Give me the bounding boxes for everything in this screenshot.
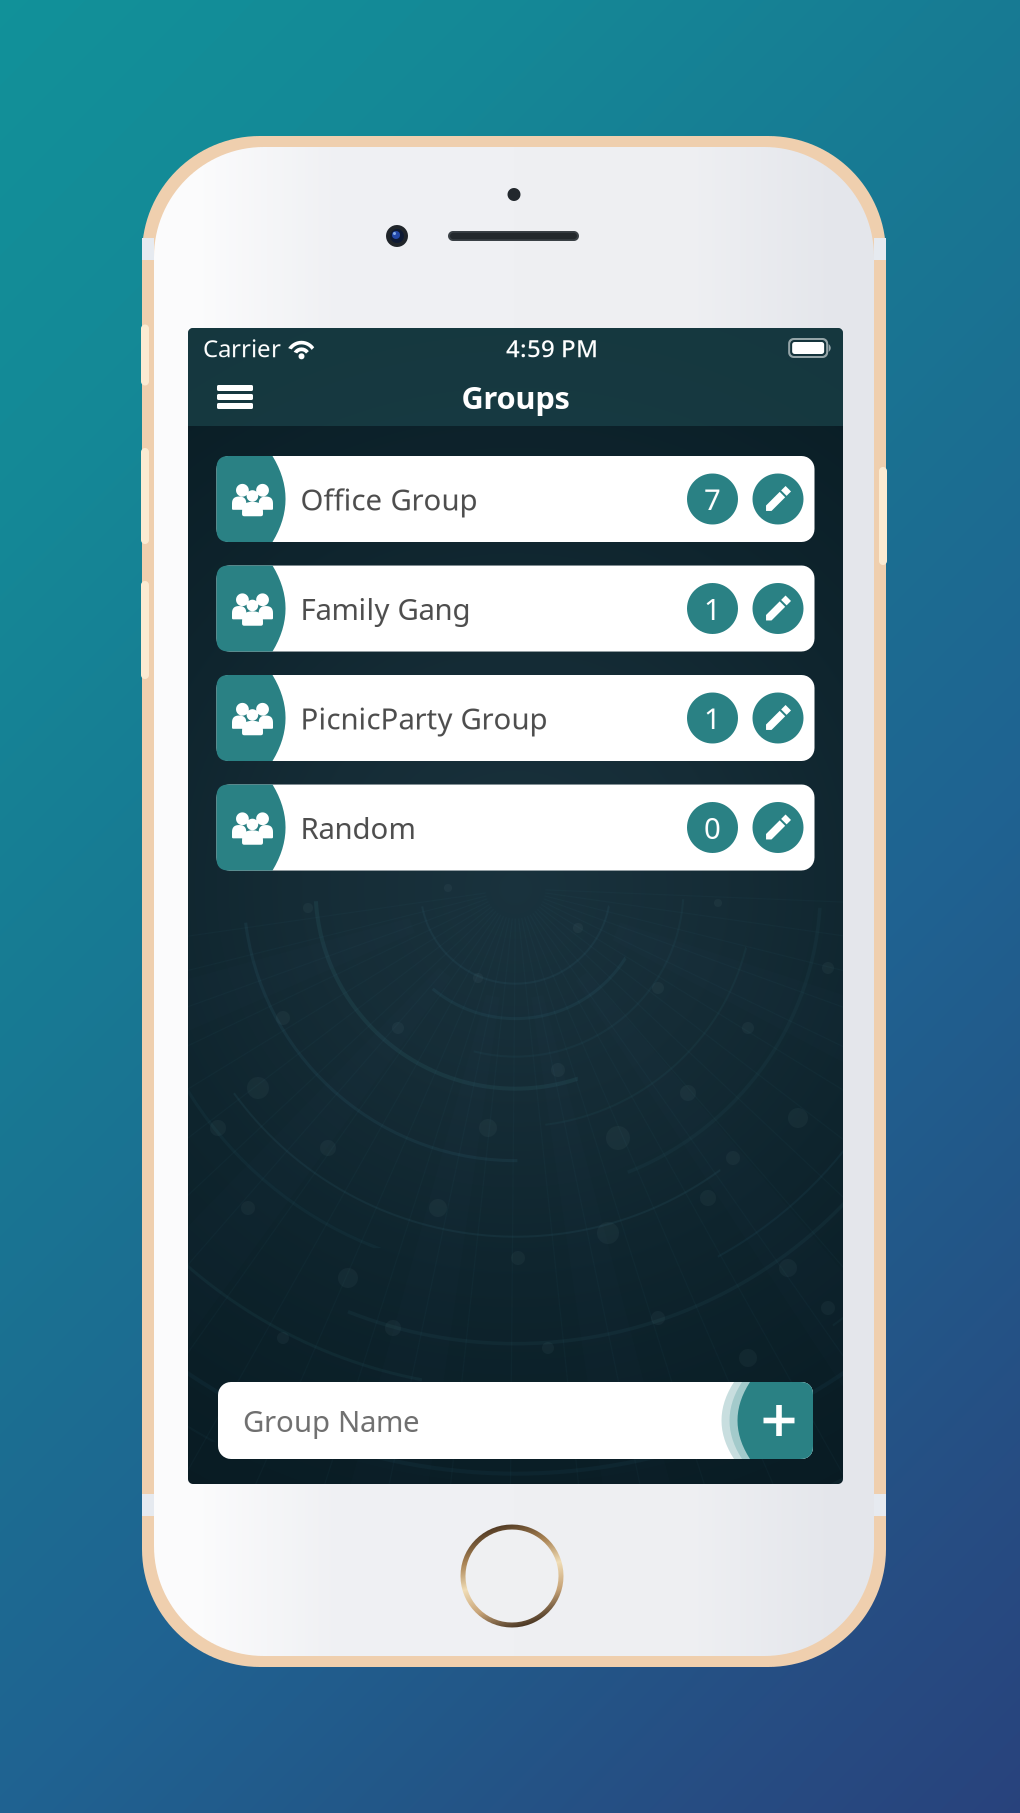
- button[interactable]: Office Group: [216, 456, 814, 542]
- staticText: 7: [704, 479, 721, 518]
- staticText: Groups: [461, 377, 569, 417]
- staticText: 1: [704, 698, 721, 737]
- staticText: Random: [300, 808, 415, 847]
- button[interactable]: Family Gang: [216, 565, 814, 651]
- staticText: 1: [704, 589, 721, 628]
- staticText: Group Name: [243, 1401, 420, 1440]
- staticText: 0: [704, 808, 721, 847]
- staticText: Family Gang: [300, 589, 470, 628]
- staticText: Office Group: [300, 479, 477, 518]
- staticText: Carrier: [203, 332, 281, 364]
- button[interactable]: Add group: [721, 1382, 813, 1459]
- button[interactable]: Random: [216, 784, 814, 870]
- button[interactable]: Menu: [206, 368, 264, 426]
- button[interactable]: PicnicParty Group: [216, 675, 814, 761]
- staticText: PicnicParty Group: [300, 698, 547, 737]
- staticText: 4:59 PM: [506, 332, 598, 364]
